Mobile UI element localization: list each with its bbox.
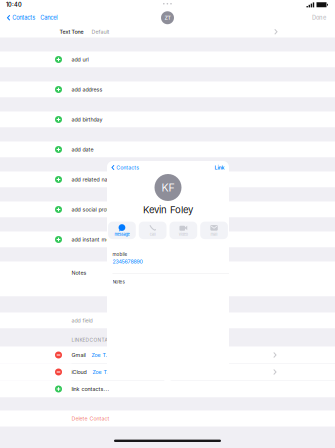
button[interactable]: Contacts	[111, 162, 139, 173]
staticText: Kevin Foley	[143, 204, 193, 216]
button[interactable]: message	[108, 222, 136, 239]
staticText: Default	[83, 28, 109, 35]
button[interactable]: Contacts	[5, 12, 37, 23]
staticText: add birthday	[71, 116, 102, 123]
button[interactable]: Done	[309, 12, 329, 23]
staticText: Cancel	[40, 14, 57, 21]
staticText: LINKED CONTACTS	[71, 337, 117, 343]
staticText: Done	[312, 14, 326, 21]
staticText: Zoe T...	[86, 369, 112, 375]
button[interactable]: iCloud	[0, 363, 335, 380]
button[interactable]: call	[139, 222, 166, 239]
button[interactable]: add instant mes	[0, 231, 335, 247]
button[interactable]: add url	[0, 51, 335, 67]
staticText: add instant mes	[71, 236, 112, 243]
button[interactable]: video	[169, 222, 197, 239]
button[interactable]: Cancel	[37, 12, 60, 23]
button[interactable]: mail	[200, 222, 228, 239]
staticText: add related nam	[71, 176, 112, 183]
staticText: iCloud	[71, 369, 86, 375]
staticText: add url	[71, 56, 88, 63]
staticText: 2345678890	[112, 258, 142, 265]
staticText: 10:40	[6, 1, 22, 8]
button[interactable]: Text Tone	[0, 25, 335, 38]
staticText: add field	[71, 317, 92, 324]
staticText: ZT	[164, 14, 170, 21]
staticText: video	[179, 232, 188, 237]
button[interactable]: Link	[214, 162, 224, 173]
button[interactable]: Gmail	[0, 346, 335, 363]
staticText: call	[150, 232, 156, 237]
button[interactable]: add field	[0, 312, 335, 328]
staticText: Contacts	[12, 14, 35, 21]
staticText: add social profi	[71, 206, 109, 213]
staticText: Zoe T...	[85, 352, 111, 358]
button[interactable]: add address	[0, 81, 335, 97]
staticText: Contacts	[116, 164, 139, 171]
staticText: link contacts...	[71, 386, 109, 392]
staticText: mail	[210, 232, 217, 237]
staticText: Text Tone	[59, 28, 83, 35]
button[interactable]: mobile	[107, 247, 229, 273]
staticText: add date	[71, 146, 93, 153]
staticText: Gmail	[71, 352, 85, 358]
button[interactable]: add birthday	[0, 111, 335, 127]
staticText: mobile	[112, 252, 127, 257]
button[interactable]: link contacts...	[0, 380, 335, 397]
button[interactable]: Account	[161, 11, 174, 24]
button[interactable]: add social profi	[0, 201, 335, 217]
staticText: Link	[214, 164, 224, 171]
button[interactable]: add date	[0, 141, 335, 157]
staticText: Delete Contact	[71, 415, 109, 422]
button[interactable]: add related nam	[0, 171, 335, 187]
staticText: Notes	[71, 269, 86, 276]
staticText: add address	[71, 86, 102, 93]
button[interactable]: Delete Contact	[0, 410, 335, 426]
staticText: KF	[161, 181, 174, 194]
staticText: message	[114, 232, 129, 237]
staticText: Notes	[112, 279, 124, 285]
